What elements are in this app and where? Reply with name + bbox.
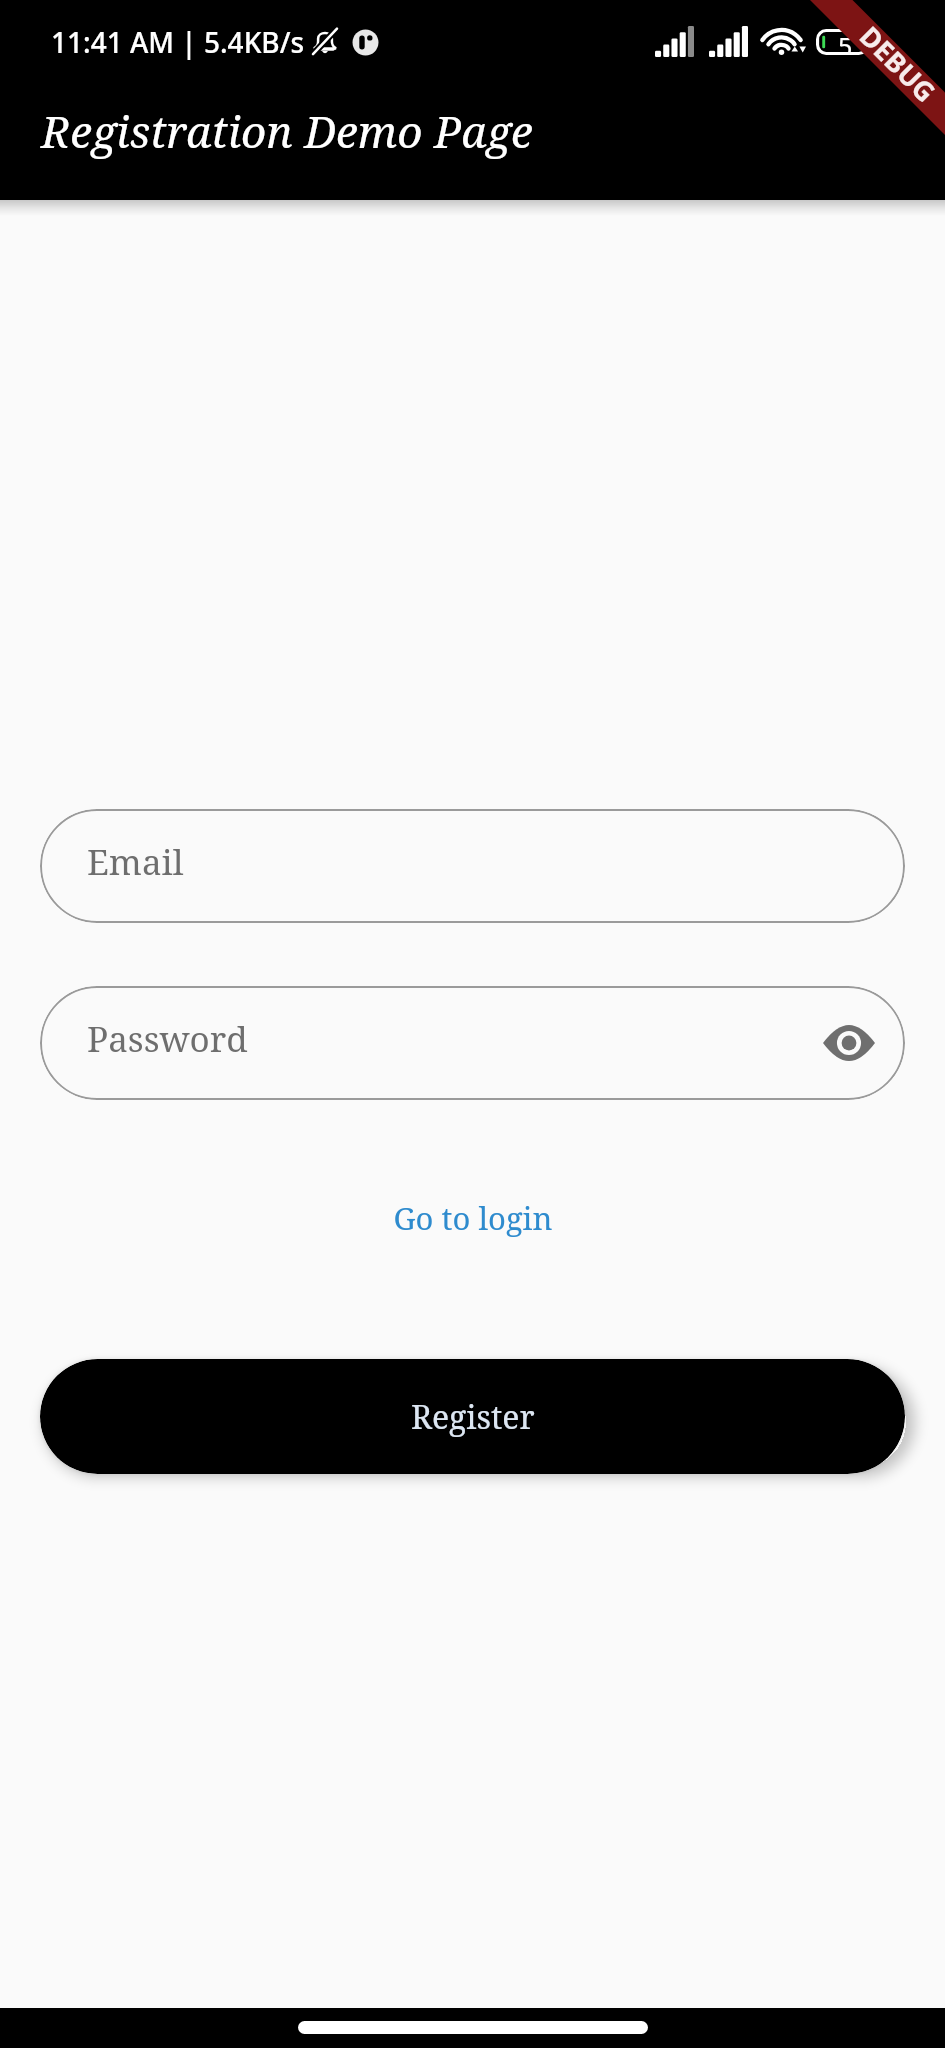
staticText: 5 [838, 29, 853, 55]
staticText: DEBUG [852, 18, 944, 110]
staticText: Go to login [393, 1197, 553, 1239]
button[interactable]: Password [40, 986, 905, 1100]
button[interactable]: Register [40, 1359, 905, 1474]
staticText: Register [411, 1395, 535, 1439]
button[interactable]: Go to login [379, 1187, 567, 1249]
staticText: 11:41 AM | 5.4KB/s [51, 23, 305, 61]
button[interactable]: Email [40, 809, 905, 923]
button[interactable]: Toggle password visibility [815, 1009, 883, 1077]
staticText: Password [87, 1015, 248, 1063]
staticText: Registration Demo Page [41, 101, 533, 161]
staticText: Email [87, 838, 184, 886]
